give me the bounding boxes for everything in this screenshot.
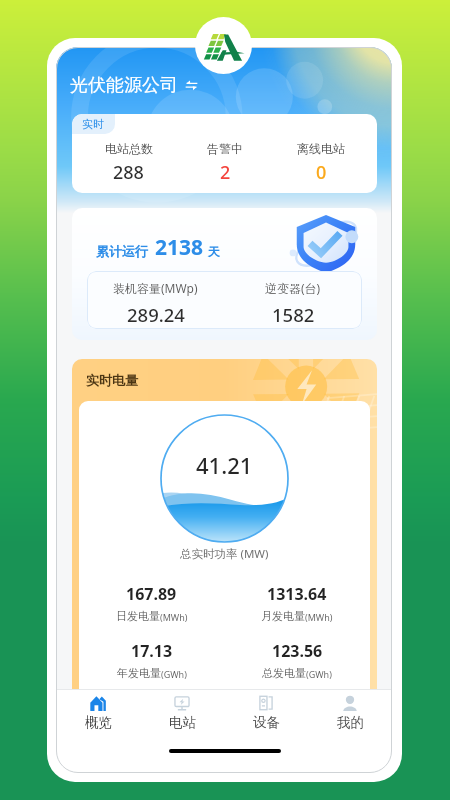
button[interactable]: Profile [308,690,392,773]
button[interactable]: 电站总数 [80,141,177,185]
staticText: 289.24 [127,302,185,327]
button[interactable]: 告警中 [177,141,273,185]
staticText: 167.89 [126,583,177,605]
staticText: 我的 [337,714,364,731]
staticText: 2 [220,160,231,185]
staticText: 1582 [272,302,315,327]
staticText: 0 [316,160,327,185]
staticText: 累计运行 [96,243,148,259]
staticText: 告警中 [207,141,243,156]
staticText: (MWh) [305,611,333,623]
other: Profile [342,695,358,711]
button[interactable]: 1313.64 [224,583,370,623]
other: Stations [174,695,190,711]
staticText: 装机容量(MWp) [113,280,198,296]
staticText: (MWh) [160,611,188,623]
staticText: 离线电站 [297,141,345,156]
other: Devices [258,695,274,711]
button[interactable]: 17.13 [79,640,224,680]
staticText: 概览 [85,714,112,731]
button[interactable]: Devices [224,690,308,773]
staticText: 123.56 [272,640,323,662]
button[interactable]: Overview [56,690,140,773]
staticText: 总发电量 [262,666,306,680]
staticText: 年发电量 [117,666,161,680]
button[interactable]: 实时 [72,114,115,134]
button[interactable]: 逆变器(台) [224,277,362,324]
staticText: 实时 [82,117,104,131]
staticText: 设备 [253,714,280,731]
staticText: 月发电量 [261,609,305,623]
staticText: 逆变器(台) [265,280,321,296]
staticText: 1313.64 [267,583,327,605]
staticText: (GWh) [306,668,332,680]
staticText: (GWh) [161,668,187,680]
button[interactable]: 167.89 [79,583,224,623]
staticText: 天 [208,244,220,259]
other: Switch company [185,79,198,92]
button[interactable]: 光伏能源公司 [70,74,198,97]
staticText: 光伏能源公司 [70,74,178,97]
staticText: 17.13 [131,640,173,662]
other: App logo [195,17,252,74]
staticText: 实时电量 [86,372,138,388]
staticText: 日发电量 [116,609,160,623]
button[interactable]: 装机容量(MWp) [87,277,224,324]
button[interactable]: 123.56 [224,640,370,680]
staticText: 2138 [155,233,204,262]
button[interactable]: Stations [140,690,224,773]
staticText: 电站总数 [105,141,153,156]
button[interactable]: 离线电站 [273,141,369,185]
staticText: 41.21 [196,450,253,480]
other: Overview [90,695,106,711]
staticText: 总实时功率 (MW) [180,546,269,562]
staticText: 288 [113,160,144,185]
staticText: 电站 [169,714,196,731]
